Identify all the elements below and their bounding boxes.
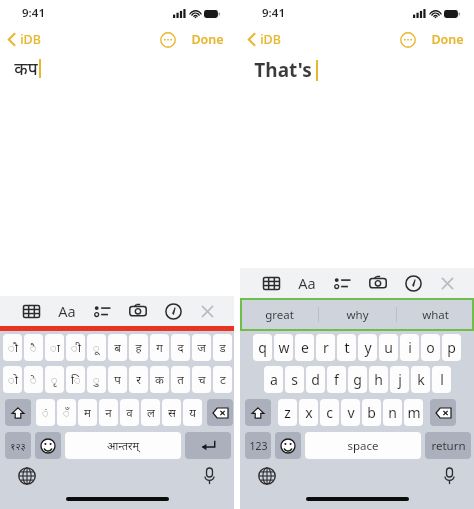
button[interactable]: iDB <box>5 28 44 51</box>
button[interactable]: space <box>305 432 421 459</box>
button[interactable]: Dictation <box>201 465 218 487</box>
button[interactable]: x <box>299 399 318 426</box>
button[interactable]: Emoji <box>35 432 61 459</box>
button[interactable]: ृ <box>45 366 64 393</box>
staticText: 9:41 <box>262 5 285 21</box>
button[interactable]: u <box>379 334 398 361</box>
button[interactable]: n <box>383 399 402 426</box>
button[interactable]: Switch keyboard <box>256 465 278 487</box>
button[interactable]: m <box>404 399 423 426</box>
button[interactable]: y <box>358 334 377 361</box>
button[interactable]: ज <box>192 334 211 361</box>
button[interactable]: ब <box>108 334 127 361</box>
button[interactable]: d <box>306 366 325 393</box>
button[interactable]: ल <box>141 399 160 426</box>
button[interactable]: Checklist <box>91 300 114 323</box>
button[interactable]: Return <box>185 432 231 459</box>
button[interactable]: Shift <box>245 399 271 426</box>
button[interactable]: Markup <box>402 272 425 295</box>
button[interactable]: z <box>278 399 297 426</box>
button[interactable]: a <box>264 366 283 393</box>
button[interactable]: ँ <box>57 399 76 426</box>
button[interactable]: why <box>319 298 396 331</box>
button[interactable]: p <box>442 334 461 361</box>
staticText: a <box>270 370 278 389</box>
button[interactable]: ो <box>3 366 22 393</box>
button[interactable]: द <box>171 334 190 361</box>
button[interactable]: Checklist <box>331 272 354 295</box>
button[interactable]: क <box>150 366 169 393</box>
button[interactable]: Markup <box>162 300 185 323</box>
button[interactable]: आन्तरम् <box>65 432 181 459</box>
button[interactable]: ि <box>66 366 85 393</box>
button[interactable]: Shift <box>5 399 31 426</box>
button[interactable]: Done <box>429 28 466 51</box>
button[interactable]: ौ <box>3 334 22 361</box>
button[interactable]: ी <box>66 334 85 361</box>
button[interactable]: e <box>295 334 314 361</box>
button[interactable]: Switch keyboard <box>16 465 38 487</box>
button[interactable]: t <box>337 334 356 361</box>
button[interactable]: Text format <box>295 270 319 296</box>
button[interactable]: प <box>108 366 127 393</box>
button[interactable]: त <box>171 366 190 393</box>
button[interactable]: Close keyboard <box>437 273 458 294</box>
button[interactable]: b <box>362 399 381 426</box>
button[interactable]: More options <box>158 30 178 50</box>
button[interactable]: १२३ <box>5 432 31 459</box>
button[interactable]: s <box>285 366 304 393</box>
button[interactable]: ह <box>129 334 148 361</box>
button[interactable]: य <box>183 399 202 426</box>
button[interactable]: ू <box>87 334 106 361</box>
button[interactable]: o <box>421 334 440 361</box>
button[interactable]: great <box>240 298 318 331</box>
button[interactable]: ं <box>36 399 55 426</box>
button[interactable]: j <box>390 366 409 393</box>
button[interactable]: Text format <box>55 298 79 324</box>
button[interactable]: g <box>348 366 367 393</box>
button[interactable]: k <box>411 366 430 393</box>
button[interactable]: व <box>120 399 139 426</box>
button[interactable]: म <box>78 399 97 426</box>
staticText: ग <box>156 340 163 356</box>
button[interactable]: l <box>432 366 451 393</box>
button[interactable]: More options <box>398 30 418 50</box>
button[interactable]: Insert table <box>20 300 43 323</box>
staticText: ब <box>114 340 121 356</box>
button[interactable]: ु <box>87 366 106 393</box>
button[interactable]: return <box>425 432 471 459</box>
button[interactable]: v <box>341 399 360 426</box>
button[interactable]: 123 <box>245 432 271 459</box>
button[interactable]: स <box>162 399 181 426</box>
button[interactable]: ग <box>150 334 169 361</box>
button[interactable]: what <box>397 298 474 331</box>
button[interactable]: Dictation <box>441 465 458 487</box>
button[interactable]: h <box>369 366 388 393</box>
button[interactable]: Emoji <box>275 432 301 459</box>
button[interactable]: q <box>253 334 272 361</box>
button[interactable]: च <box>192 366 211 393</box>
button[interactable]: Backspace <box>207 399 233 426</box>
button[interactable]: r <box>316 334 335 361</box>
button[interactable]: न <box>99 399 118 426</box>
button[interactable]: Camera <box>366 271 390 295</box>
button[interactable]: र <box>129 366 148 393</box>
staticText: १२३ <box>10 439 26 453</box>
button[interactable]: Close keyboard <box>197 301 218 322</box>
button[interactable]: ड <box>213 334 232 361</box>
button[interactable]: c <box>320 399 339 426</box>
button[interactable]: Done <box>189 28 226 51</box>
button[interactable]: ै <box>24 334 43 361</box>
button[interactable]: iDB <box>245 28 284 51</box>
staticText: x <box>305 403 313 422</box>
button[interactable]: Backspace <box>430 399 456 426</box>
button[interactable]: w <box>274 334 293 361</box>
staticText: आन्तरम् <box>107 438 139 453</box>
button[interactable]: ट <box>213 366 232 393</box>
button[interactable]: Insert table <box>260 272 283 295</box>
button[interactable]: f <box>327 366 346 393</box>
button[interactable]: i <box>400 334 419 361</box>
button[interactable]: Camera <box>126 299 150 323</box>
button[interactable]: े <box>24 366 43 393</box>
button[interactable]: ा <box>45 334 64 361</box>
